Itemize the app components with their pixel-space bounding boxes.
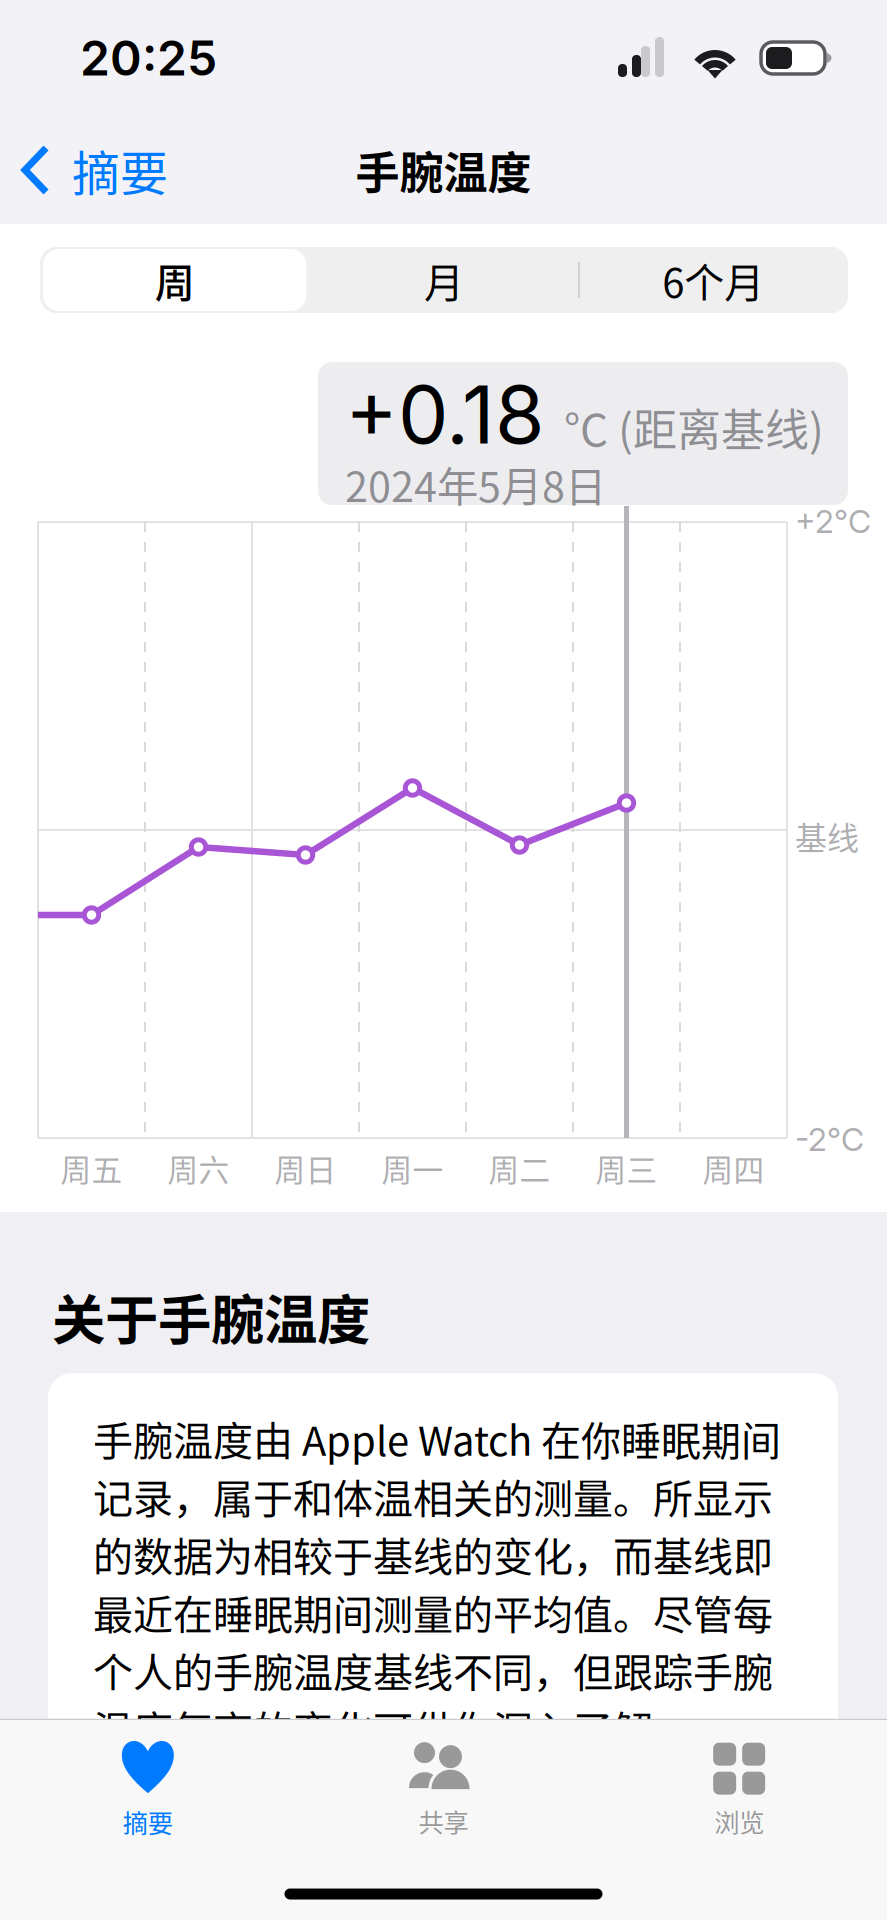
staticText: 周日 [274,1146,336,1190]
staticText: +0.18 [345,366,544,463]
button[interactable]: 摘要 [0,1720,296,1840]
staticText: 周 [155,251,195,309]
staticText: °C (距离基线) [564,395,824,459]
button[interactable]: 浏览 [591,1721,887,1839]
staticText: 周一 [381,1146,443,1190]
staticText: 基线 [795,813,859,859]
button[interactable]: 月 [309,247,579,313]
staticText: 周六 [167,1146,229,1190]
staticText: 月 [424,251,464,309]
button[interactable]: 6个月 [579,247,848,313]
staticText: 摘要 [72,135,168,205]
staticText: 周五 [60,1146,122,1190]
staticText: 浏览 [714,1803,764,1839]
button[interactable]: 周 [40,247,309,313]
staticText: 手腕温度 [355,138,531,202]
staticText: 共享 [418,1803,468,1839]
staticText: 手腕温度由 Apple Watch 在你睡眠期间记录，属于和体温相关的测量。所显… [93,1409,781,1757]
staticText: 20:25 [80,29,217,87]
button[interactable]: 共享 [296,1721,591,1839]
staticText: 周二 [488,1146,550,1190]
staticText: 6个月 [662,251,764,309]
staticText: 摘要 [123,1803,173,1840]
staticText: 周三 [595,1146,657,1190]
staticText: 周四 [702,1146,764,1190]
staticText: 2024年5月8日 [345,454,606,514]
button[interactable]: 摘要 [0,125,168,215]
staticText: 关于手腕温度 [52,1278,370,1355]
staticText: +2°C [795,502,871,541]
staticText: -2°C [795,1120,864,1159]
